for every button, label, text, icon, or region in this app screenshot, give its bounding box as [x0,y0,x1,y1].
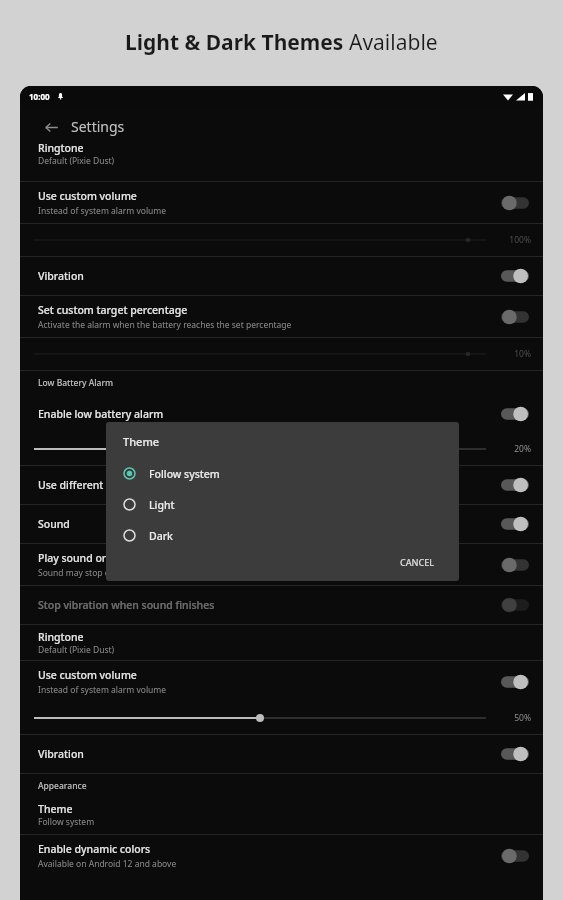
button[interactable]: Toggle on [501,406,529,422]
staticText: Use custom volume [38,668,137,682]
button[interactable]: Toggle on [501,477,529,493]
button[interactable]: Theme [20,798,543,834]
staticText: 10:00 [29,91,50,102]
staticText: Available [349,28,438,57]
staticText: Light [149,498,175,512]
staticText: Vibration [38,269,493,283]
staticText: Enable dynamic colors [38,842,151,856]
button[interactable]: Vibration [20,735,543,773]
button[interactable]: Stop vibration when sound finishes [20,586,543,624]
button[interactable]: Follow system [106,460,459,487]
staticText: CANCEL [400,556,435,568]
staticText: Sound [38,517,493,531]
staticText: Theme [123,434,160,449]
button[interactable]: 10% [20,338,543,370]
staticText: Ringtone [38,630,84,644]
button[interactable]: Set custom target percentage [20,296,543,337]
staticText: Instead of system alarm volume [38,684,167,696]
staticText: Follow system [38,816,95,828]
button[interactable]: Light [106,491,459,518]
staticText: Appearance [38,780,87,792]
button[interactable]: 100% [20,224,543,256]
staticText: Light & Dark Themes [125,28,349,57]
staticText: Instead of system alarm volume [38,205,167,217]
staticText: Available on Android 12 and above [38,858,177,870]
button[interactable]: Toggle off [501,848,529,864]
button[interactable]: Sound [20,505,543,543]
staticText: Settings [71,117,125,136]
button[interactable]: Vibration [20,257,543,295]
button[interactable]: Dark [106,522,459,549]
staticText: Use different ringtone [38,478,493,492]
staticText: Enable low battery alarm [38,407,493,421]
button[interactable]: Toggle on [501,746,529,762]
staticText: Use custom volume [38,189,137,203]
staticText: Play sound only once [38,551,144,565]
button[interactable]: Enable dynamic colors [20,835,543,876]
staticText: Dark [149,529,173,543]
button[interactable]: Toggle off [501,557,529,573]
staticText: Ringtone [38,141,84,155]
button[interactable]: Use custom volume [20,661,543,702]
staticText: Set custom target percentage [38,303,188,317]
staticText: Default (Pixie Dust) [38,155,115,167]
button[interactable]: Enable low battery alarm [20,395,543,433]
button[interactable]: Toggle off [501,309,529,325]
staticText: Activate the alarm when the battery reac… [38,319,292,331]
button[interactable]: CANCEL [385,550,449,574]
staticText: 10% [514,348,531,360]
staticText: 100% [509,234,531,246]
button[interactable]: 20% [20,433,543,465]
staticText: Low Battery Alarm [38,377,114,389]
button[interactable]: Toggle on [501,516,529,532]
button[interactable]: 50% [20,702,543,734]
button[interactable]: Back [38,114,64,140]
button[interactable]: Play sound only once [20,544,543,585]
button[interactable]: Toggle off [501,597,529,613]
staticText: Vibration [38,747,493,761]
staticText: Follow system [149,467,220,481]
staticText: Sound may stop early [38,567,125,579]
button[interactable]: Use custom volume [20,182,543,223]
staticText: Theme [38,802,73,816]
button[interactable]: Toggle on [501,674,529,690]
button[interactable]: Toggle off [501,195,529,211]
button[interactable]: Use different ringtone [20,466,543,504]
button[interactable]: Toggle on [501,268,529,284]
staticText: 20% [514,443,531,455]
staticText: Default (Pixie Dust) [38,644,115,656]
staticText: Stop vibration when sound finishes [38,598,493,612]
staticText: 50% [514,712,531,724]
